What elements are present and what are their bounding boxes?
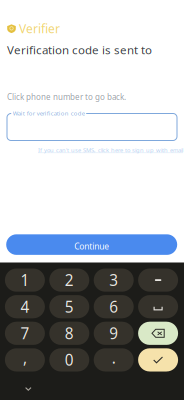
button[interactable]: 2: [49, 268, 89, 292]
button[interactable]: Continue: [6, 234, 177, 255]
staticText: .: [112, 347, 116, 368]
staticText: Click phone number to go back.: [7, 91, 126, 102]
button[interactable]: 8: [49, 322, 89, 345]
button[interactable]: 0: [49, 348, 89, 371]
button[interactable]: 9: [94, 322, 134, 345]
button[interactable]: Comma: [5, 348, 45, 371]
staticText: ,: [23, 347, 27, 368]
button[interactable]: 5: [49, 295, 89, 318]
button[interactable]: Backspace: [138, 322, 178, 345]
staticText: 4: [20, 296, 29, 317]
button[interactable]: Dash: [138, 268, 178, 292]
staticText: 7: [20, 323, 29, 344]
staticText: 9: [109, 323, 118, 344]
button[interactable]: Enter: [138, 348, 178, 371]
button[interactable]: 3: [94, 268, 134, 292]
staticText: 8: [65, 323, 74, 344]
button[interactable]: Period: [94, 348, 134, 371]
staticText: 6: [109, 296, 118, 317]
button[interactable]: 6: [94, 295, 134, 318]
staticText: Verifier: [19, 20, 60, 37]
staticText: 0: [65, 349, 74, 370]
staticText: 1: [20, 270, 29, 291]
button[interactable]: Hide keyboard: [19, 382, 38, 396]
staticText: 2: [65, 270, 74, 291]
button[interactable]: 4: [5, 295, 45, 318]
staticText: Wait for verification code: [13, 109, 85, 117]
button[interactable]: 1: [5, 268, 45, 292]
button[interactable]: Space: [138, 295, 178, 318]
staticText: 5: [65, 296, 74, 317]
staticText: Verification code is sent to: [7, 42, 152, 58]
staticText: Continue: [74, 240, 109, 252]
button[interactable]: 7: [5, 322, 45, 345]
button[interactable]: If you can't use SMS, click here to sign…: [38, 146, 183, 154]
staticText: 3: [109, 270, 118, 291]
staticText: If you can't use SMS, click here to sign…: [38, 146, 183, 154]
